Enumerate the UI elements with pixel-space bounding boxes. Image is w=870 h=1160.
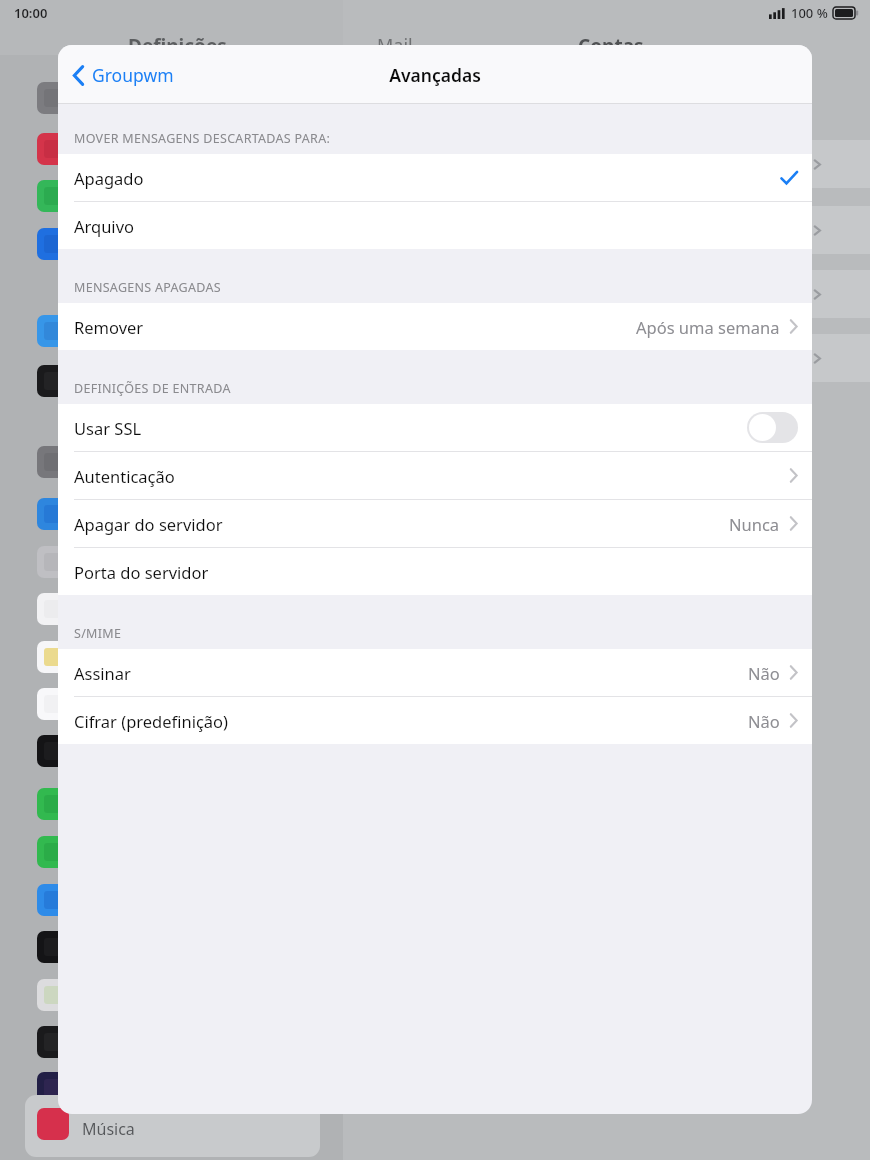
staticText: S/MIME bbox=[74, 625, 122, 642]
button[interactable]: Autenticação bbox=[58, 452, 812, 500]
staticText: Não bbox=[748, 710, 780, 732]
staticText: Mail bbox=[377, 33, 413, 58]
staticText: 10:00 bbox=[14, 4, 48, 22]
staticText: Cifrar (predefinição) bbox=[74, 710, 229, 732]
staticText: Porta do servidor bbox=[74, 561, 209, 583]
staticText: Usar SSL bbox=[74, 417, 142, 439]
button[interactable]: Cifrar (predefinição) bbox=[58, 697, 812, 744]
staticText: Groupwm bbox=[92, 63, 174, 87]
staticText: Contas bbox=[578, 33, 644, 59]
other: Selecionado bbox=[780, 170, 798, 186]
staticText: Apagar do servidor bbox=[74, 513, 223, 535]
button[interactable]: Usar SSL, desligado bbox=[747, 412, 798, 443]
staticText: MENSAGENS APAGADAS bbox=[74, 279, 221, 296]
staticText: Nunca bbox=[729, 513, 780, 535]
button[interactable]: Usar SSL bbox=[58, 404, 812, 452]
staticText: MOVER MENSAGENS DESCARTADAS PARA: bbox=[74, 130, 331, 147]
staticText: DEFINIÇÕES DE ENTRADA bbox=[74, 380, 231, 397]
button[interactable]: Remover bbox=[58, 303, 812, 350]
staticText: Remover bbox=[74, 316, 144, 338]
staticText: Avançadas bbox=[389, 63, 481, 87]
button[interactable]: Apagar do servidor bbox=[58, 500, 812, 548]
staticText: Arquivo bbox=[74, 215, 134, 237]
button[interactable]: Porta do servidor bbox=[58, 548, 812, 595]
staticText: 100 % bbox=[791, 4, 828, 22]
staticText: Autenticação bbox=[74, 465, 175, 487]
staticText: Apagado bbox=[74, 167, 144, 189]
staticText: Após uma semana bbox=[636, 316, 780, 338]
staticText: Música bbox=[82, 1118, 135, 1140]
staticText: Não bbox=[748, 662, 780, 684]
staticText: Assinar bbox=[74, 662, 131, 684]
button[interactable]: Arquivo bbox=[58, 202, 812, 249]
button[interactable]: Apagado bbox=[58, 154, 812, 202]
button[interactable]: Groupwm bbox=[58, 57, 184, 93]
button[interactable]: Assinar bbox=[58, 649, 812, 697]
staticText: Definições bbox=[128, 33, 227, 59]
